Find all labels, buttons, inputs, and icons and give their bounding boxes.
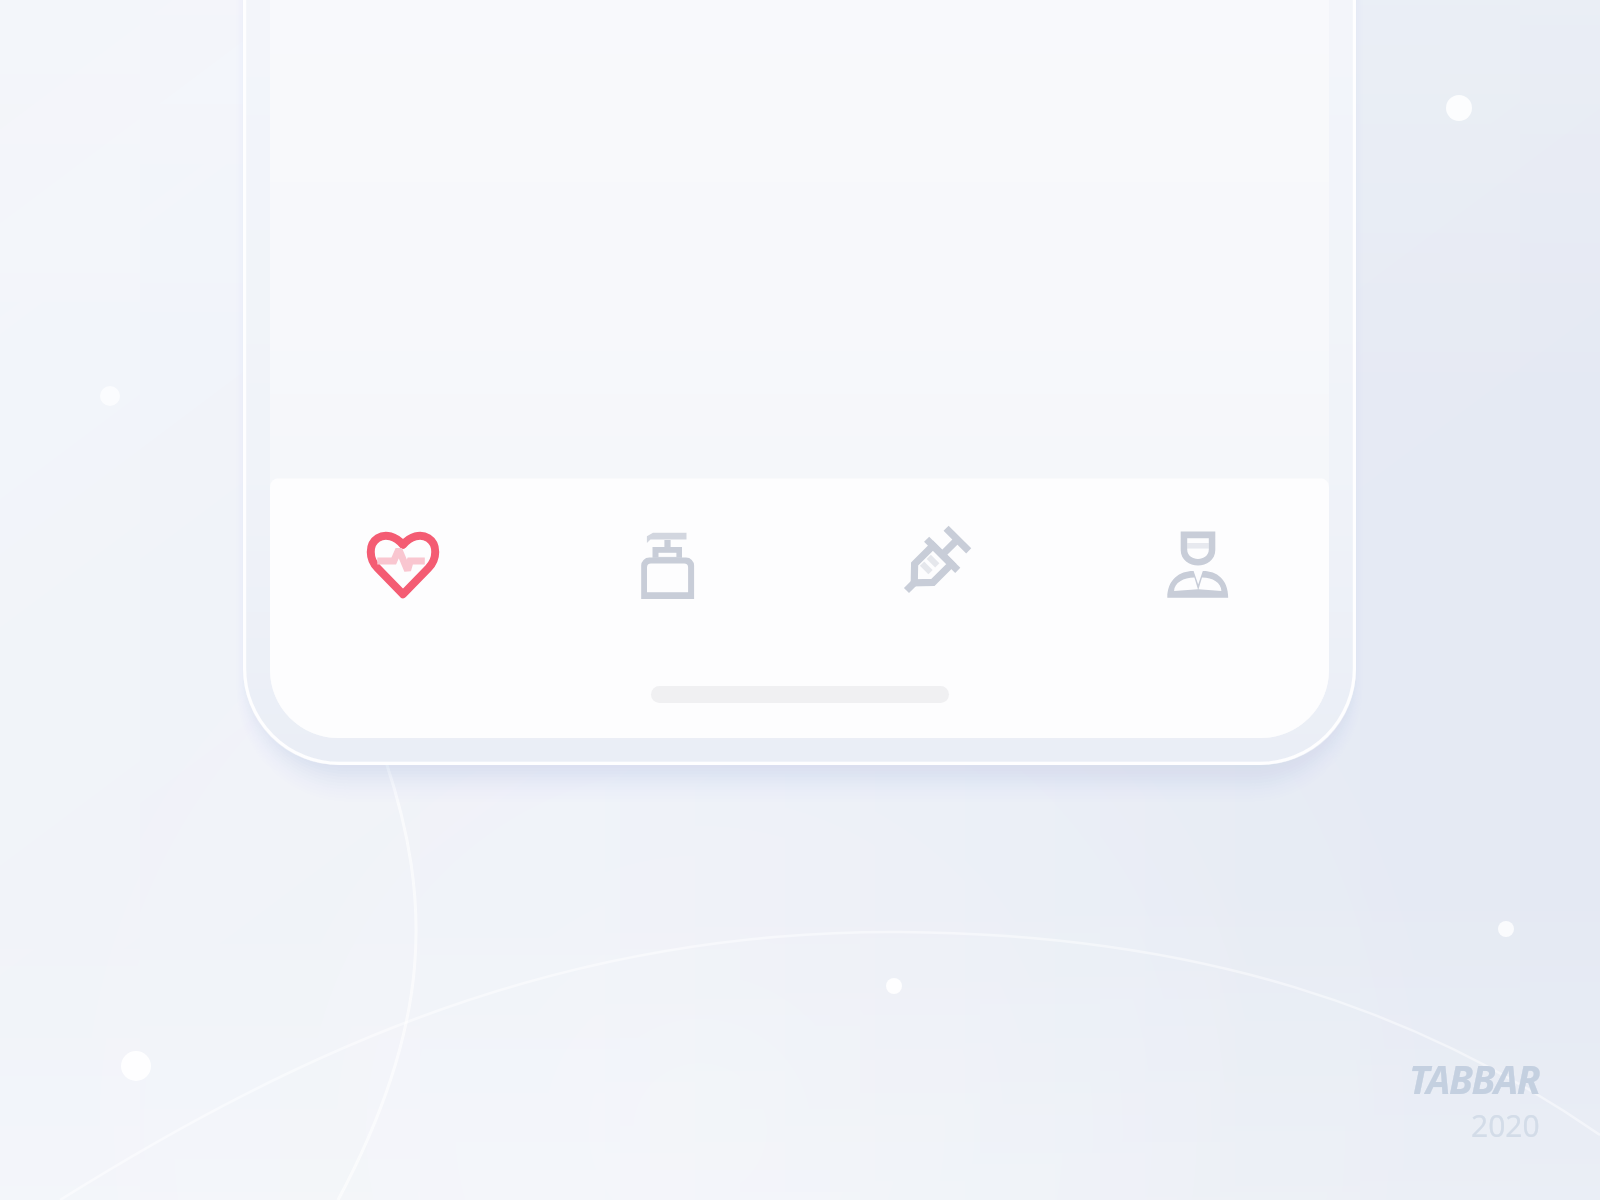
button[interactable]: Doctor bbox=[1134, 500, 1262, 628]
button[interactable]: Health bbox=[339, 500, 467, 628]
staticText: 2020 bbox=[1471, 1105, 1540, 1146]
button[interactable]: Vaccine bbox=[869, 500, 997, 628]
button[interactable]: Sanitizer bbox=[604, 500, 732, 628]
staticText: TABBAR bbox=[1409, 1053, 1540, 1105]
